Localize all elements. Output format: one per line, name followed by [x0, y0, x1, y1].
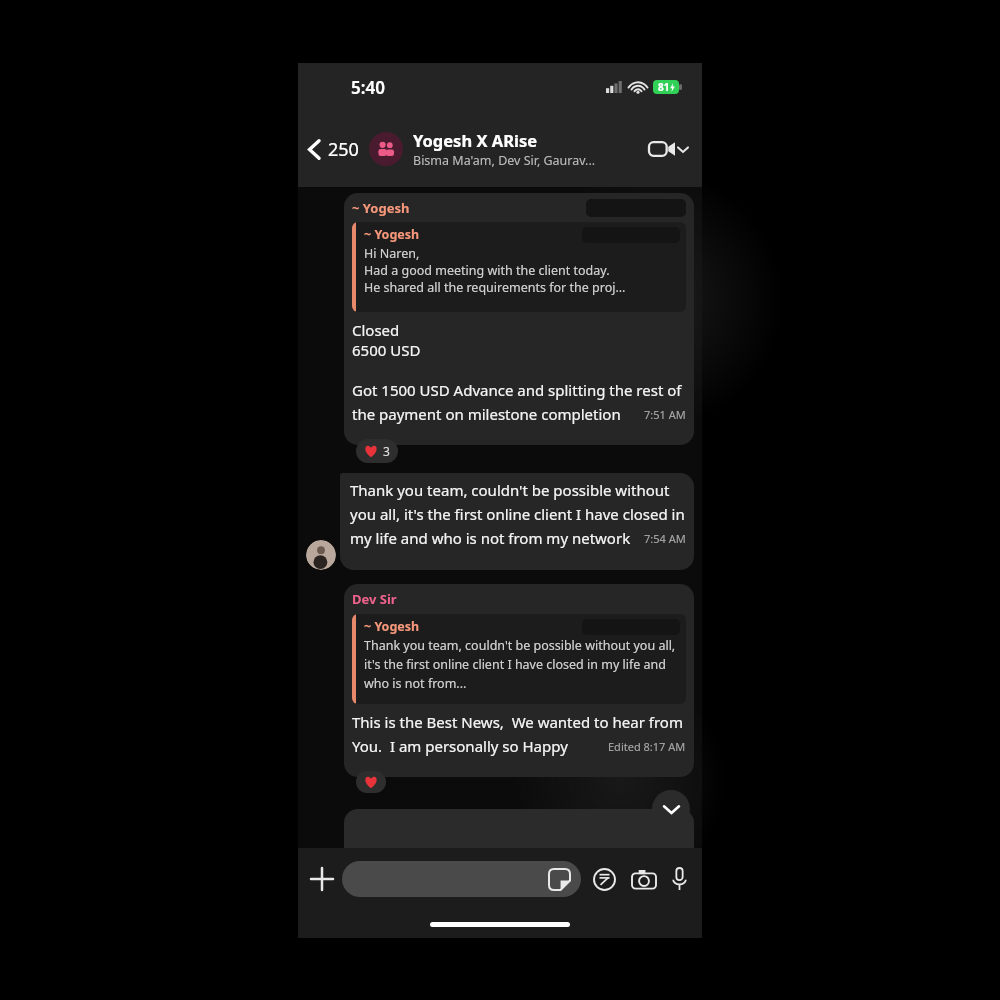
staticText: 81	[658, 80, 670, 94]
staticText: 7:51 AM	[644, 407, 686, 422]
staticText: Edited 8:17 AM	[608, 739, 686, 754]
staticText: 7:54 AM	[644, 531, 686, 546]
staticText: Thank you team, couldn't be possible wit…	[364, 637, 680, 692]
button[interactable]: Attach	[298, 858, 342, 900]
staticText: ~ Yogesh	[364, 618, 420, 635]
staticText: 3	[383, 443, 390, 459]
button[interactable]: Video call	[639, 128, 702, 170]
button[interactable]: Camera	[624, 862, 664, 897]
button[interactable]: Scroll to bottom	[652, 790, 690, 828]
staticText: 6500 USD	[352, 340, 421, 360]
staticText: Dev Sir	[352, 590, 397, 608]
button[interactable]: Dev Sir	[344, 584, 694, 777]
button[interactable]	[356, 771, 386, 793]
staticText: This is the Best News, We wanted to hear…	[352, 712, 686, 756]
staticText: Thank you team, couldn't be possible wit…	[350, 480, 686, 548]
button[interactable]: Stickers	[549, 869, 570, 890]
staticText: Yogesh X ARise	[413, 129, 538, 151]
staticText: ~ Yogesh	[364, 226, 420, 243]
button[interactable]: Payments	[585, 860, 624, 899]
staticText: Got 1500 USD Advance and splitting the r…	[352, 380, 686, 424]
staticText: He shared all the requirements for the p…	[364, 279, 626, 296]
staticText: Bisma Ma'am, Dev Sir, Gaurav...	[413, 152, 596, 169]
button[interactable]: Stickers	[342, 861, 581, 897]
button[interactable]: Yogesh X ARise	[369, 129, 639, 169]
staticText: Closed	[352, 320, 400, 340]
staticText: Had a good meeting with the client today…	[364, 262, 610, 279]
button[interactable]: Voice message	[664, 860, 702, 898]
staticText: Hi Naren,	[364, 245, 420, 262]
staticText: ~ Yogesh	[352, 199, 410, 217]
button[interactable]: Back, 250 unread chats	[298, 127, 363, 172]
button[interactable]: ~ Yogesh	[344, 193, 694, 445]
staticText: 5:40	[351, 76, 385, 99]
button[interactable]: 3	[356, 439, 398, 463]
staticText: 250	[328, 137, 359, 162]
button[interactable]: Thank you team, couldn't be possible wit…	[340, 473, 694, 570]
